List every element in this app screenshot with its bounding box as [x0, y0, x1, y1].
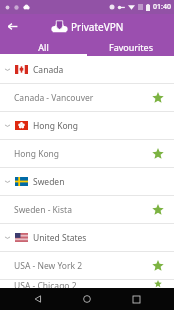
button[interactable]: Favourite [150, 202, 166, 218]
button[interactable]: Hong Kong [0, 112, 174, 139]
button[interactable]: USA - Chicago 2 [0, 280, 174, 288]
staticText: Sweden [33, 176, 65, 188]
button[interactable]: All [0, 38, 87, 56]
button[interactable]: Canada - Vancouver [0, 84, 174, 111]
staticText: 01:40 [153, 2, 171, 12]
button[interactable]: Favourites [87, 38, 174, 56]
staticText: USA - New York 2 [14, 260, 150, 272]
button[interactable]: USA - New York 2 [0, 252, 174, 279]
button[interactable]: Back [27, 288, 49, 310]
staticText: Hong Kong [33, 120, 79, 132]
button[interactable]: Canada [0, 56, 174, 83]
staticText: Canada [33, 64, 64, 76]
button[interactable]: Favourite [150, 280, 166, 288]
button[interactable]: Favourite [150, 146, 166, 162]
button[interactable]: Back [2, 16, 22, 36]
button[interactable]: Sweden - Kista [0, 196, 174, 223]
staticText: USA - Chicago 2 [14, 280, 150, 288]
staticText: Favourites [109, 41, 153, 53]
staticText: PrivateVPN [71, 20, 124, 34]
staticText: Hong Kong [14, 148, 150, 160]
staticText: United States [33, 232, 87, 244]
button[interactable]: United States [0, 224, 174, 251]
button[interactable]: Favourite [150, 90, 166, 106]
staticText: All [38, 41, 49, 53]
staticText: Sweden - Kista [14, 204, 150, 216]
button[interactable]: Hong Kong [0, 140, 174, 167]
button[interactable]: Sweden [0, 168, 174, 195]
button[interactable]: Recents [125, 288, 147, 310]
button[interactable]: Home [76, 288, 98, 310]
button[interactable]: Favourite [150, 258, 166, 274]
staticText: Canada - Vancouver [14, 92, 150, 104]
